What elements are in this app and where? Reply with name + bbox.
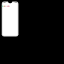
button[interactable]: App screen — [0, 0, 64, 64]
other: App screen — [0, 0, 64, 64]
